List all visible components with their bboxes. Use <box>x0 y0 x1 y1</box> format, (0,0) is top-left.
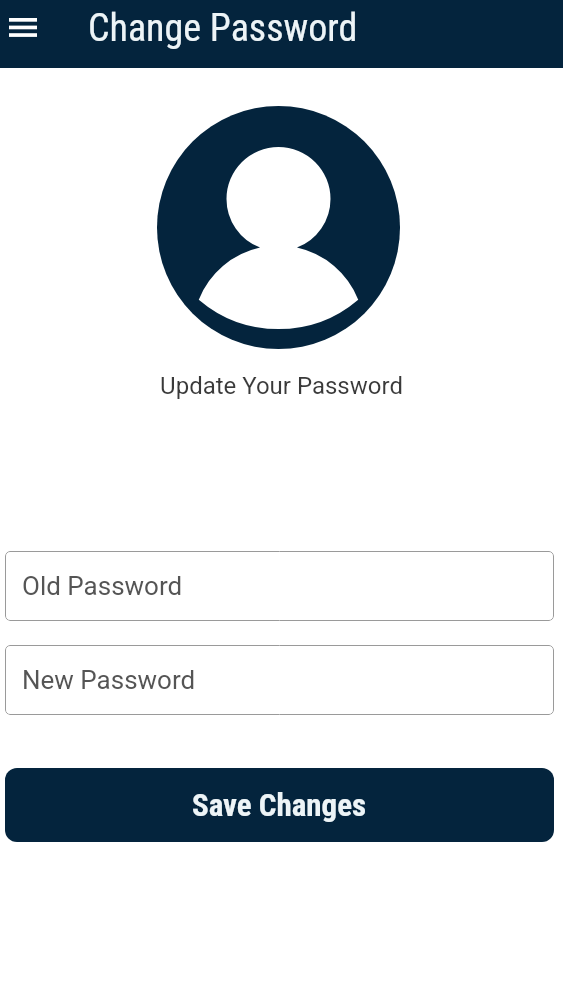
staticText: Change Password <box>88 6 358 51</box>
staticText: Old Password <box>22 571 183 601</box>
staticText: New Password <box>22 665 196 695</box>
button[interactable]: New Password <box>5 645 554 715</box>
button[interactable]: Open navigation menu <box>0 5 46 50</box>
staticText: Save Changes <box>192 787 367 823</box>
button[interactable]: Save Changes <box>5 768 554 842</box>
button[interactable]: Old Password <box>5 551 554 621</box>
staticText: Update Your Password <box>0 372 563 400</box>
